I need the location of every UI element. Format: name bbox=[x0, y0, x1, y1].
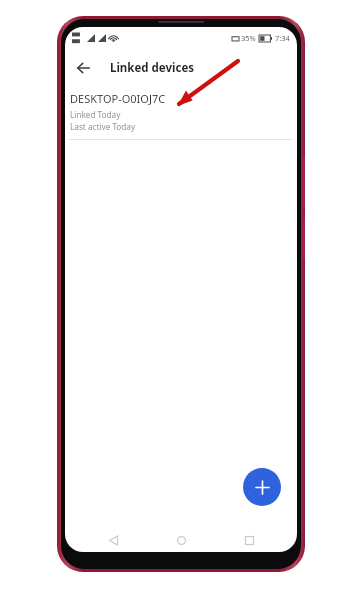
button[interactable]: Back bbox=[93, 528, 133, 552]
button[interactable]: DESKTOP-O0IOJ7C bbox=[65, 86, 297, 139]
button[interactable]: Back bbox=[68, 53, 98, 83]
staticText: Last active Today bbox=[70, 121, 136, 132]
staticText: 35% bbox=[241, 33, 256, 43]
staticText: DESKTOP-O0IOJ7C bbox=[70, 91, 166, 106]
button[interactable]: Recents bbox=[229, 528, 269, 552]
button[interactable]: Home bbox=[161, 528, 201, 552]
staticText: 7:34 bbox=[275, 33, 290, 43]
button[interactable]: Add device bbox=[243, 468, 281, 506]
staticText: Linked devices bbox=[110, 60, 195, 76]
staticText: Linked Today bbox=[70, 109, 121, 120]
